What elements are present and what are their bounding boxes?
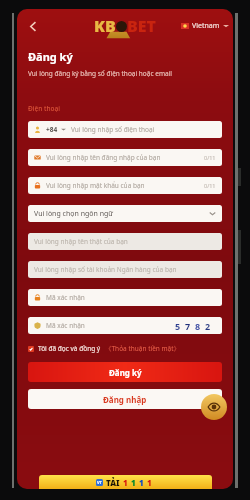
staticText: Vui lòng chọn ngôn ngữ bbox=[34, 209, 114, 219]
staticText: Đăng nhập bbox=[103, 394, 147, 405]
button[interactable]: Hỗ trợ bbox=[201, 394, 227, 420]
staticText: Mã xác nhận bbox=[46, 321, 85, 330]
staticText: 1 bbox=[131, 477, 136, 488]
staticText: 1 bbox=[123, 477, 128, 488]
button[interactable]: VT bbox=[39, 475, 212, 489]
staticText: 7 bbox=[185, 320, 191, 332]
button[interactable]: Vietnam bbox=[181, 21, 229, 31]
staticText: 2 bbox=[205, 320, 211, 332]
staticText: Vietnam bbox=[192, 21, 220, 31]
button[interactable]: Vui lòng nhập số tài khoản Ngân hàng của… bbox=[28, 261, 222, 278]
staticText: 《Thỏa thuận tiền mặt》 bbox=[105, 344, 181, 353]
staticText: Vui lòng nhập tên đăng nhập của bạn bbox=[46, 153, 161, 162]
staticText: Vui lòng đăng ký bằng số điện thoại hoặc… bbox=[28, 69, 172, 78]
button[interactable]: Vui lòng nhập tên thật của bạn bbox=[28, 233, 222, 250]
staticText: Mã xác nhận bbox=[46, 293, 85, 302]
staticText: Vui lòng nhập số tài khoản Ngân hàng của… bbox=[34, 265, 177, 274]
staticText: Đăng ký bbox=[28, 49, 73, 64]
staticText: 1 bbox=[147, 477, 152, 488]
button[interactable]: +84 bbox=[28, 121, 222, 138]
staticText: Vui lòng nhập mật khẩu của bạn bbox=[46, 181, 145, 190]
button[interactable]: Quay lại bbox=[20, 13, 46, 39]
staticText: 1 bbox=[139, 477, 144, 488]
staticText: +84 bbox=[46, 125, 58, 134]
button[interactable]: Đăng nhập bbox=[28, 389, 222, 409]
staticText: Điện thoại bbox=[28, 104, 61, 113]
staticText: 0/11 bbox=[204, 182, 216, 189]
staticText: Đăng ký bbox=[109, 367, 142, 378]
staticText: TẢI bbox=[106, 477, 120, 488]
staticText: BET bbox=[127, 15, 157, 37]
button[interactable]: Mã xác nhận bbox=[28, 289, 222, 306]
button[interactable]: Vui lòng chọn ngôn ngữ bbox=[28, 205, 222, 222]
staticText: 0/11 bbox=[204, 154, 216, 161]
button[interactable]: KB bbox=[88, 13, 162, 39]
staticText: 8 bbox=[195, 320, 201, 332]
button[interactable]: Tôi đã đọc và đồng ý bbox=[28, 344, 222, 353]
staticText: Vui lòng nhập số điện thoại bbox=[71, 125, 155, 134]
staticText: Vui lòng nhập tên thật của bạn bbox=[34, 237, 128, 246]
button[interactable]: Đăng ký bbox=[28, 362, 222, 382]
button[interactable]: Mã xác nhận bbox=[28, 317, 222, 334]
staticText: Tôi đã đọc và đồng ý bbox=[38, 344, 101, 353]
button[interactable]: Vui lòng nhập mật khẩu của bạn bbox=[28, 177, 222, 194]
staticText: VT bbox=[97, 480, 102, 485]
button[interactable]: Vui lòng nhập tên đăng nhập của bạn bbox=[28, 149, 222, 166]
staticText: KB bbox=[94, 15, 116, 37]
staticText: 5 bbox=[175, 320, 181, 332]
